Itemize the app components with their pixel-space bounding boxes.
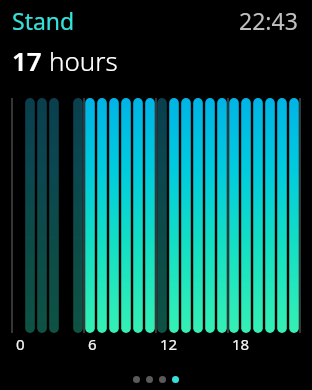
button[interactable]: Hourly stand chart	[0, 98, 312, 333]
staticText: 17	[12, 43, 42, 78]
staticText: 6	[88, 334, 97, 354]
staticText: 18	[232, 334, 250, 354]
button[interactable]: Page 4	[172, 376, 179, 383]
staticText: 0	[16, 334, 25, 354]
staticText: 22:43	[239, 5, 298, 36]
button[interactable]: Page 1	[133, 376, 140, 383]
staticText: 12	[160, 334, 178, 354]
staticText: Stand	[12, 5, 75, 36]
button[interactable]: Page 2	[146, 376, 153, 383]
button[interactable]: Page 3	[159, 376, 166, 383]
staticText: hours	[49, 43, 118, 78]
